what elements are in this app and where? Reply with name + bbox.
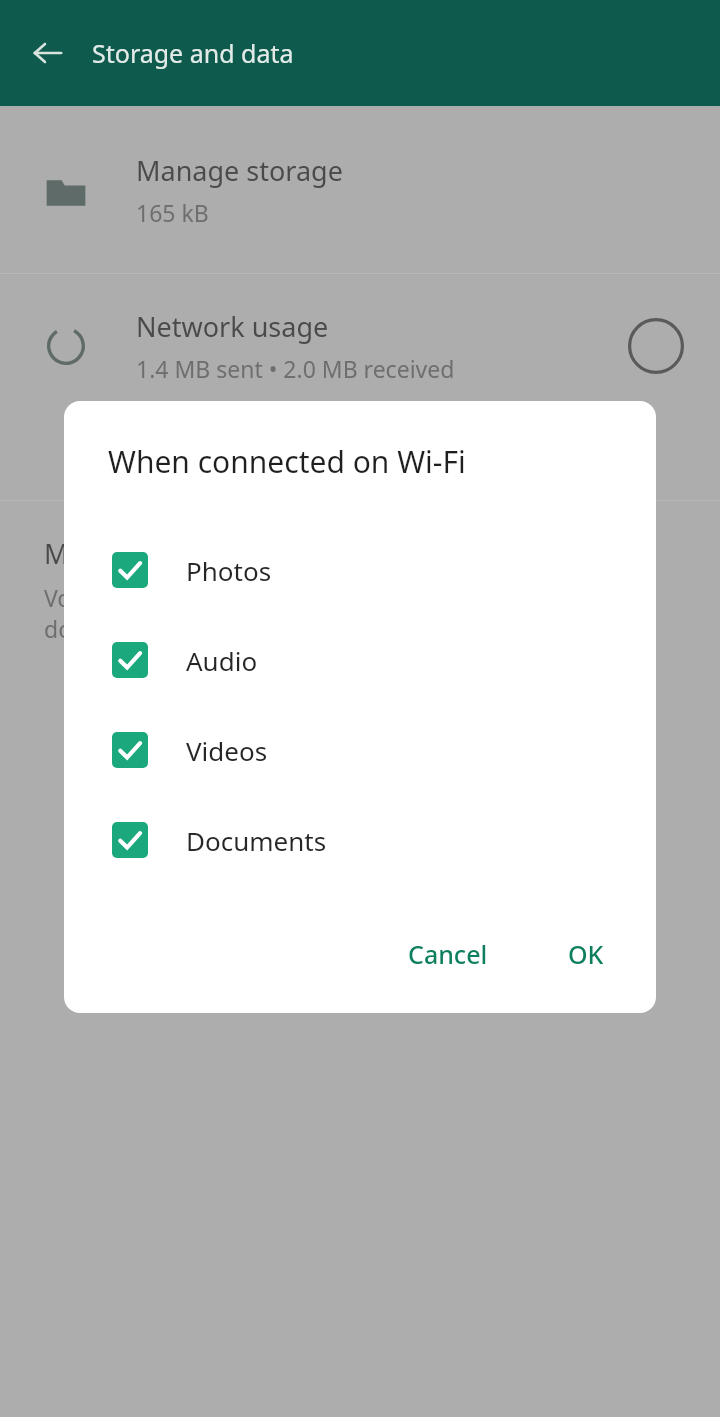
button[interactable]: Photos	[64, 525, 656, 615]
staticText: downloaded	[44, 613, 178, 644]
staticText: Audio	[186, 643, 258, 678]
button[interactable]: When roaming	[0, 801, 720, 941]
button[interactable]: When connected on Wi-Fi	[0, 661, 720, 801]
staticText: OK	[568, 937, 604, 971]
staticText: Media auto-download	[44, 535, 322, 572]
staticText: Manage storage	[136, 152, 343, 189]
button[interactable]: OK	[550, 923, 622, 985]
button[interactable]: Network usage	[0, 274, 720, 418]
staticText: When connected on Wi-Fi	[108, 441, 466, 482]
button[interactable]: Back	[22, 27, 74, 79]
staticText: Voice messages are always automatically	[44, 582, 486, 613]
staticText: 1.4 MB sent • 2.0 MB received	[136, 353, 455, 384]
button[interactable]: Documents	[64, 795, 656, 885]
button[interactable]: Videos	[64, 705, 656, 795]
staticText: 165 kB	[136, 197, 209, 228]
staticText: Photos	[186, 553, 272, 588]
staticText: Documents	[186, 823, 327, 858]
staticText: Cancel	[408, 937, 488, 971]
staticText: All media	[136, 738, 237, 769]
button[interactable]: Audio	[64, 615, 656, 705]
button[interactable]: Manage storage	[0, 106, 720, 273]
staticText: When roaming	[136, 833, 325, 870]
staticText: Network usage	[136, 308, 329, 345]
button[interactable]: Cancel	[390, 923, 506, 985]
staticText: Videos	[186, 733, 268, 768]
staticText: Storage and data	[92, 36, 294, 70]
